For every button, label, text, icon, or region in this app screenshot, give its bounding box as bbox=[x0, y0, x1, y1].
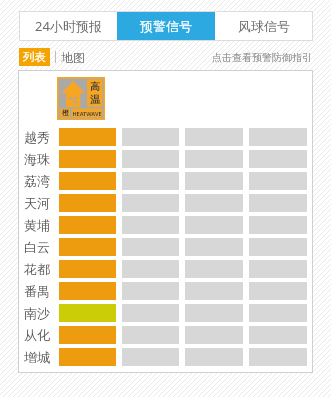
staticText: 天河 bbox=[24, 195, 50, 211]
button[interactable]: 从化 bbox=[18, 324, 313, 346]
button[interactable]: 南沙 bbox=[18, 302, 313, 324]
button[interactable]: 增城 bbox=[18, 346, 313, 368]
button[interactable]: 白云 bbox=[18, 236, 313, 258]
staticText: 从化 bbox=[24, 327, 50, 343]
button[interactable]: 黄埔 bbox=[18, 214, 313, 236]
staticText: 24小时预报 bbox=[35, 17, 102, 35]
staticText: 列表 bbox=[23, 50, 46, 64]
button[interactable]: 地图 bbox=[61, 50, 85, 65]
staticText: 白云 bbox=[24, 239, 50, 255]
button[interactable]: 天河 bbox=[18, 192, 313, 214]
staticText: °C bbox=[69, 94, 78, 105]
button[interactable]: 花都 bbox=[18, 258, 313, 280]
staticText: HEATWAVE bbox=[72, 110, 102, 117]
staticText: 越秀 bbox=[24, 129, 50, 145]
staticText: 南沙 bbox=[24, 305, 50, 321]
staticText: 黄埔 bbox=[24, 217, 50, 233]
staticText: 增城 bbox=[24, 349, 50, 365]
staticText: 橙 bbox=[62, 108, 69, 117]
button[interactable]: 24小时预报 bbox=[19, 11, 117, 41]
staticText: 地图 bbox=[61, 50, 85, 65]
staticText: 温 bbox=[90, 93, 100, 106]
button[interactable]: 海珠 bbox=[18, 148, 313, 170]
button[interactable]: 越秀 bbox=[18, 126, 313, 148]
staticText: 荔湾 bbox=[24, 173, 50, 189]
button[interactable]: 列表 bbox=[19, 48, 50, 66]
staticText: 预警信号 bbox=[140, 18, 192, 34]
button[interactable]: 预警信号 bbox=[117, 11, 215, 41]
button[interactable]: 荔湾 bbox=[18, 170, 313, 192]
button[interactable]: 风球信号 bbox=[215, 11, 313, 41]
staticText: 花都 bbox=[24, 261, 50, 277]
staticText: 点击查看预警防御指引 bbox=[212, 51, 312, 64]
staticText: 海珠 bbox=[24, 151, 50, 167]
staticText: 风球信号 bbox=[238, 18, 290, 34]
staticText: 高 bbox=[90, 80, 100, 93]
staticText: 番禺 bbox=[24, 283, 50, 299]
button[interactable]: 点击查看预警防御指引 bbox=[212, 51, 312, 64]
button[interactable]: 番禺 bbox=[18, 280, 313, 302]
button[interactable]: 高温橙色预警信号 bbox=[57, 77, 105, 120]
